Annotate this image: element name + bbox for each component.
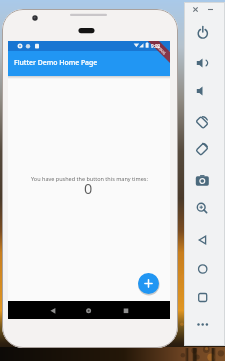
button[interactable] [193, 113, 212, 132]
staticText: You have pushed the button this many tim… [31, 175, 148, 182]
button[interactable] [193, 288, 212, 307]
button[interactable] [193, 198, 212, 217]
staticText: 0 [84, 178, 93, 198]
button[interactable] [193, 24, 212, 43]
button[interactable] [193, 54, 212, 73]
staticText: DEBUG [155, 43, 167, 55]
button[interactable] [43, 301, 63, 318]
button[interactable] [193, 171, 212, 190]
button[interactable] [78, 301, 98, 318]
button[interactable] [114, 301, 134, 318]
button[interactable] [193, 82, 212, 101]
button[interactable] [193, 315, 212, 334]
button[interactable] [193, 140, 212, 159]
staticText: Flutter Demo Home Page [14, 58, 98, 67]
button[interactable]: Flutter Demo Home Page [8, 51, 170, 76]
button[interactable] [193, 231, 212, 250]
button[interactable] [193, 260, 212, 279]
button[interactable] [138, 273, 159, 294]
staticText: 9:02 [151, 43, 161, 49]
